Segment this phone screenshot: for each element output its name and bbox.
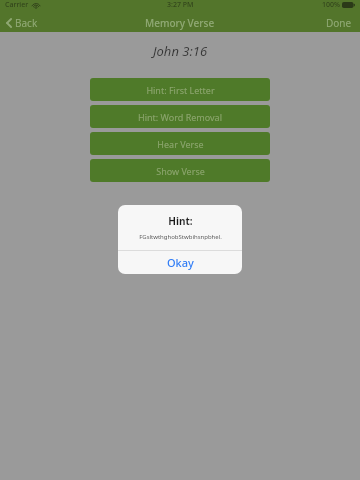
staticText: Show Verse — [156, 165, 205, 177]
button[interactable]: Show Verse — [90, 159, 270, 182]
button[interactable]: Hint: Word Removal — [90, 105, 270, 128]
staticText: 100% — [322, 0, 340, 10]
button[interactable]: Hint: First Letter — [90, 78, 270, 101]
button[interactable]: Okay — [118, 251, 242, 274]
staticText: Hint: Word Removal — [138, 111, 222, 123]
staticText: Hear Verse — [157, 138, 204, 150]
staticText: Done — [326, 16, 352, 30]
staticText: John 3:16 — [153, 42, 208, 60]
staticText: Back — [15, 16, 38, 30]
staticText: Memory Verse — [145, 16, 215, 30]
staticText: FGsltwthghobStwbihsnpbhel. — [139, 233, 222, 241]
staticText: 3:27 PM — [167, 0, 194, 10]
staticText: Hint: — [168, 214, 193, 228]
staticText: Carrier — [5, 0, 29, 10]
button[interactable]: Done — [318, 14, 360, 32]
staticText: Hint: First Letter — [146, 84, 215, 96]
staticText: Okay — [167, 255, 194, 270]
button[interactable]: Hear Verse — [90, 132, 270, 155]
button[interactable]: Back — [0, 14, 46, 32]
